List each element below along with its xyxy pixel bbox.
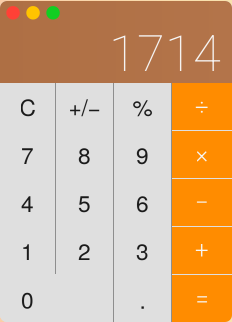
button[interactable]: 5 [56,179,113,226]
staticText: + [195,236,209,264]
staticText: 5 [78,186,91,219]
button[interactable]: ÷ [172,83,232,130]
button[interactable]: 6 [114,179,171,226]
staticText: 2 [78,234,91,267]
staticText: 8 [78,138,91,171]
button[interactable]: + [172,227,232,274]
button[interactable]: × [172,131,232,178]
button[interactable]: 8 [56,131,113,178]
staticText: C [19,90,35,123]
staticText: 1 [21,234,34,267]
button[interactable]: 3 [114,227,171,274]
staticText: % [132,90,152,123]
staticText: − [195,188,209,216]
button[interactable]: % [114,83,171,130]
button[interactable]: 1 [0,227,55,274]
staticText: ÷ [195,92,209,120]
staticText: 0 [21,283,34,315]
staticText: 4 [21,186,34,219]
staticText: × [195,140,208,168]
staticText: 9 [136,138,149,171]
staticText: = [195,285,208,313]
button[interactable]: +/− [56,83,113,130]
staticText: . [139,283,145,315]
staticText: 6 [136,186,149,219]
button[interactable]: . [114,275,171,322]
button[interactable]: 2 [56,227,113,274]
button[interactable]: Zoom [46,6,60,20]
staticText: 7 [21,138,34,171]
button[interactable]: Close [6,6,20,20]
button[interactable]: C [0,83,55,130]
staticText: 3 [136,234,149,267]
button[interactable]: − [172,179,232,226]
staticText: 1714 [109,24,221,84]
button[interactable]: 9 [114,131,171,178]
staticText: +/− [68,90,100,123]
button[interactable]: Minimise [26,6,40,20]
button[interactable]: 0 [0,275,113,322]
button[interactable]: 7 [0,131,55,178]
button[interactable]: = [172,275,232,322]
button[interactable]: 4 [0,179,55,226]
